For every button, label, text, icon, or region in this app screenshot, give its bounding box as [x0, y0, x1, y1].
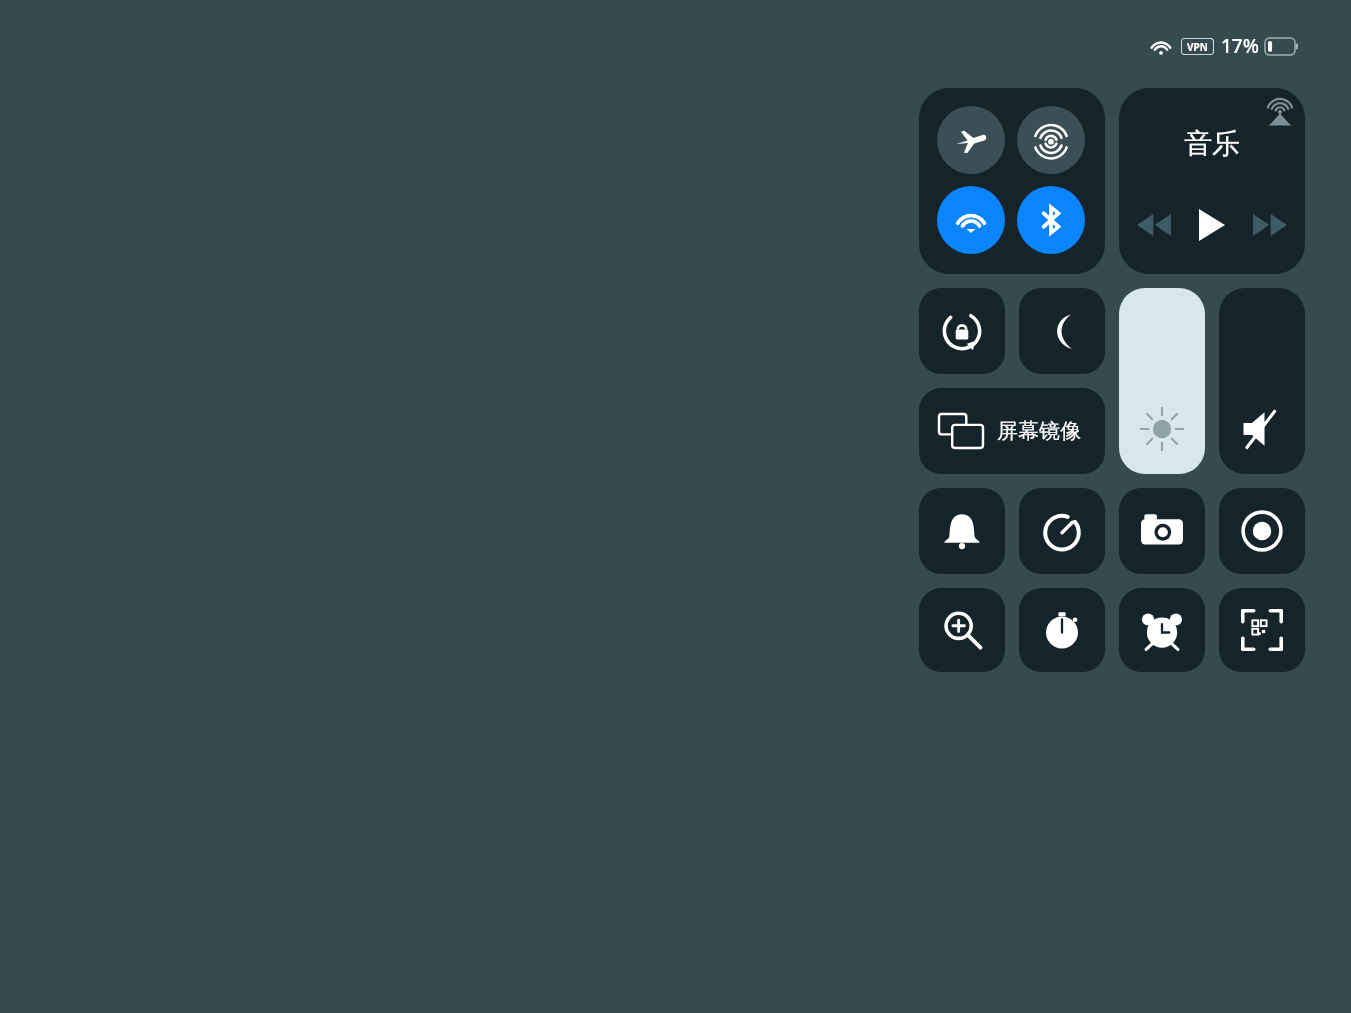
button[interactable]: Next [1247, 202, 1293, 248]
button[interactable]: Bluetooth [1017, 186, 1085, 254]
button[interactable]: Do not disturb [1019, 288, 1105, 374]
other: AirPlay [1267, 100, 1293, 126]
button[interactable]: Brightness [1119, 288, 1205, 474]
button[interactable]: Volume [1219, 288, 1305, 474]
button[interactable]: Rotation lock [919, 288, 1005, 374]
staticText: 屏幕镜像 [997, 418, 1081, 444]
staticText: VPN [1187, 40, 1208, 54]
button[interactable]: Alarm [1119, 588, 1205, 672]
button[interactable]: 屏幕镜像 [919, 388, 1105, 474]
button[interactable]: Screen record [1219, 488, 1305, 574]
staticText: 音乐 [1184, 126, 1240, 161]
button[interactable]: Scan QR code [1219, 588, 1305, 672]
button[interactable]: AirDrop [1017, 106, 1085, 174]
button[interactable]: Wi-Fi [937, 186, 1005, 254]
button[interactable]: Magnifier [919, 588, 1005, 672]
button[interactable]: Timer [1019, 488, 1105, 574]
button[interactable]: AirPlay [1119, 88, 1305, 274]
button[interactable]: Silent mode [919, 488, 1005, 574]
button[interactable]: Previous [1131, 202, 1177, 248]
staticText: 17% [1221, 33, 1259, 59]
button[interactable]: Play [1189, 202, 1235, 248]
button[interactable]: Airplane mode [937, 106, 1005, 174]
button[interactable]: Stopwatch [1019, 588, 1105, 672]
button[interactable]: Camera [1119, 488, 1205, 574]
